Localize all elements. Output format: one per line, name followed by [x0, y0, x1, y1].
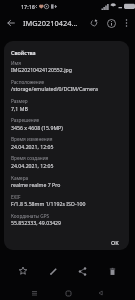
staticText: 55.852333, 49.03429 — [11, 219, 62, 226]
staticText: 3456 x 4608 (15.9MP) — [11, 124, 63, 131]
staticText: Имя — [11, 60, 21, 66]
staticText: Разрешение — [11, 117, 40, 123]
button[interactable]: Home — [61, 286, 75, 300]
button[interactable]: Back — [2, 14, 20, 32]
staticText: Время изменения — [11, 136, 53, 142]
staticText: 7,1 MB — [11, 105, 28, 112]
button[interactable]: Recents — [27, 286, 41, 300]
button[interactable]: Share — [71, 260, 93, 282]
button[interactable]: OK — [107, 237, 123, 248]
staticText: /storage/emulated/0/DCIM/Camera — [11, 85, 98, 92]
staticText: IMG20210424120552.jpg — [11, 66, 72, 73]
staticText: Свойства — [11, 49, 36, 56]
staticText: Размер — [11, 98, 28, 104]
staticText: Координаты GPS — [11, 213, 50, 219]
staticText: Камера — [11, 175, 29, 181]
button[interactable]: Rotate — [86, 15, 102, 31]
staticText: OK — [111, 239, 119, 246]
staticText: Время создания — [11, 155, 49, 161]
staticText: F/1.8 5.58mm 1/1192s ISO-100 — [11, 200, 86, 207]
button[interactable]: Favorite — [12, 260, 34, 282]
staticText: Расположение — [11, 79, 45, 85]
button[interactable]: More options — [119, 16, 133, 30]
staticText: EXIF — [11, 194, 21, 200]
button[interactable]: Info — [103, 15, 119, 31]
staticText: IMG20210424... — [23, 18, 78, 28]
button[interactable]: Delete — [101, 260, 123, 282]
staticText: 17:16 — [21, 3, 35, 10]
staticText: realme realme 7 Pro — [11, 181, 61, 188]
button[interactable]: Back — [94, 286, 108, 300]
staticText: 24.04.2021, 12:05 — [11, 162, 54, 169]
staticText: 24.04.2021, 12:05 — [11, 143, 54, 150]
button[interactable]: Edit — [42, 260, 64, 282]
